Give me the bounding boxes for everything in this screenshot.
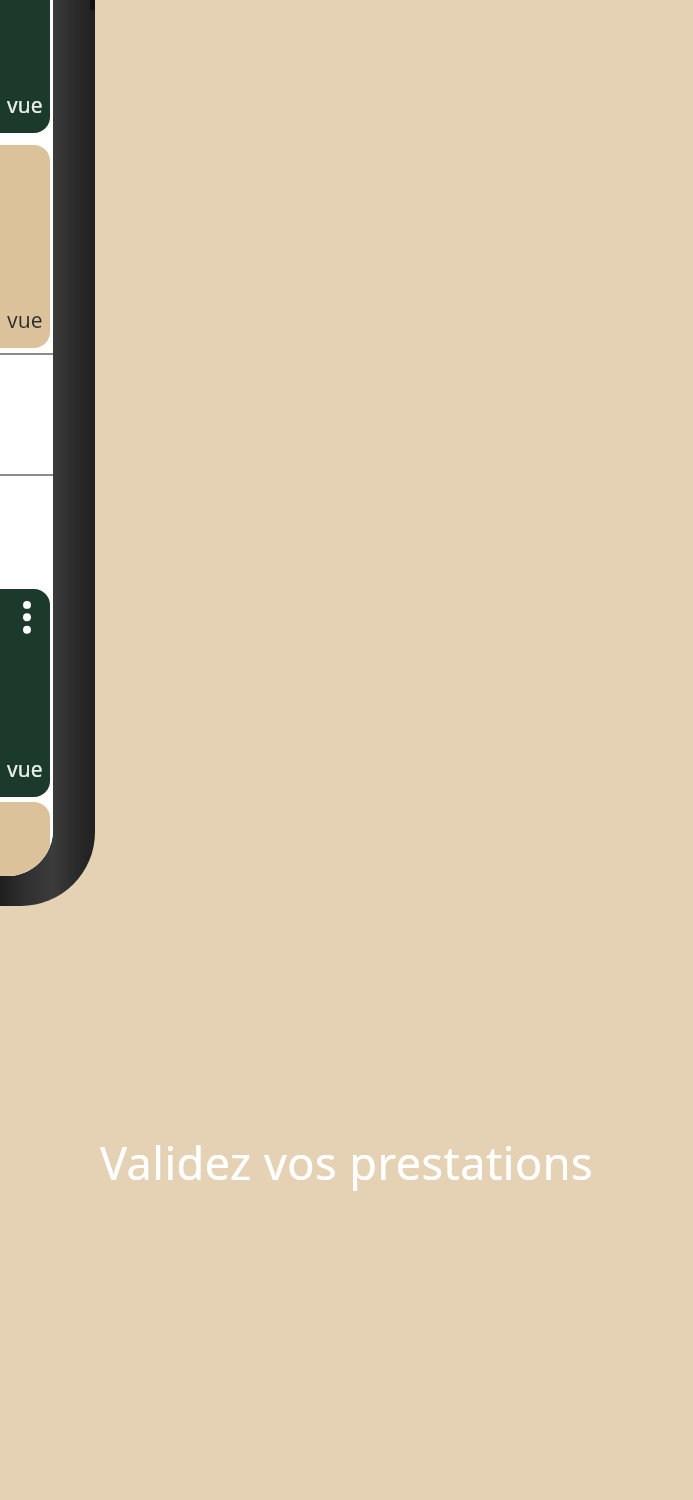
button[interactable]: More options <box>0 589 50 797</box>
staticText: vue <box>7 306 43 335</box>
button[interactable]: vue <box>0 0 50 133</box>
staticText: vue <box>7 755 43 784</box>
button[interactable]: More options <box>18 598 36 644</box>
button[interactable]: vue <box>0 145 50 348</box>
staticText: Validez vos prestations <box>20 1132 673 1193</box>
staticText: vue <box>7 91 43 120</box>
button[interactable] <box>0 802 50 876</box>
